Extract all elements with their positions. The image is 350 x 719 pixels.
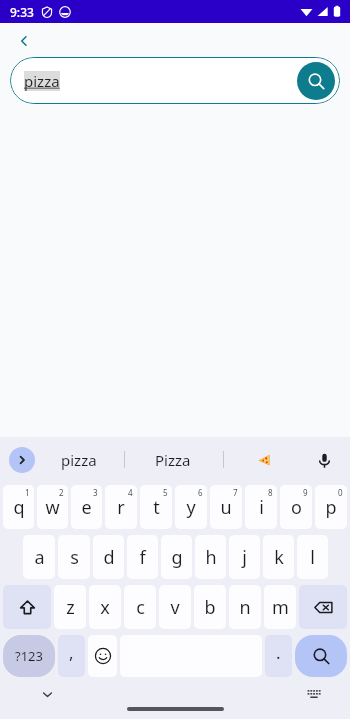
staticText: 5: [163, 487, 168, 498]
button[interactable]: m: [264, 585, 296, 629]
staticText: 1: [25, 487, 30, 498]
button[interactable]: x: [89, 585, 121, 629]
button[interactable]: Shift: [3, 585, 51, 629]
staticText: m: [272, 595, 289, 620]
staticText: q: [13, 495, 25, 520]
button[interactable]: Back: [10, 27, 38, 55]
staticText: b: [204, 595, 216, 620]
staticText: 9: [303, 487, 308, 498]
staticText: c: [136, 595, 145, 620]
button[interactable]: d: [93, 535, 124, 579]
staticText: 4: [128, 487, 133, 498]
staticText: s: [70, 545, 79, 570]
button[interactable]: o: [280, 485, 312, 529]
button[interactable]: Voice input: [308, 444, 340, 476]
button[interactable]: .: [265, 635, 292, 677]
button[interactable]: c: [124, 585, 156, 629]
button[interactable]: More suggestions: [9, 447, 35, 473]
staticText: pizza: [24, 71, 60, 91]
button[interactable]: f: [127, 535, 158, 579]
staticText: h: [205, 545, 217, 570]
button[interactable]: w: [37, 485, 68, 529]
button[interactable]: Pizza emoji: [244, 441, 282, 479]
staticText: 7: [233, 487, 238, 498]
staticText: o: [291, 495, 302, 520]
staticText: i: [259, 495, 264, 520]
button[interactable]: Search: [297, 62, 335, 100]
button[interactable]: Pizza: [133, 440, 213, 480]
button[interactable]: y: [175, 485, 207, 529]
button[interactable]: i: [245, 485, 277, 529]
button[interactable]: z: [54, 585, 86, 629]
staticText: z: [66, 595, 75, 620]
staticText: f: [139, 545, 146, 570]
staticText: g: [171, 545, 183, 570]
staticText: r: [117, 495, 125, 520]
staticText: w: [45, 495, 60, 520]
button[interactable]: r: [105, 485, 137, 529]
staticText: y: [186, 495, 196, 520]
staticText: ?123: [15, 647, 43, 665]
button[interactable]: Hide keyboard: [34, 681, 60, 707]
staticText: l: [310, 545, 315, 570]
staticText: 6: [198, 487, 203, 498]
button[interactable]: Emoji: [88, 635, 117, 677]
button[interactable]: l: [297, 535, 328, 579]
button[interactable]: g: [161, 535, 192, 579]
staticText: .: [276, 641, 281, 664]
staticText: v: [170, 595, 180, 620]
staticText: e: [81, 495, 92, 520]
staticText: t: [153, 495, 160, 520]
staticText: 3: [93, 487, 98, 498]
button[interactable]: ,: [58, 635, 85, 677]
button[interactable]: Backspace: [299, 585, 347, 629]
button[interactable]: t: [140, 485, 172, 529]
staticText: Pizza: [155, 450, 191, 470]
staticText: x: [100, 595, 110, 620]
staticText: u: [220, 495, 232, 520]
button[interactable]: b: [194, 585, 226, 629]
button[interactable]: v: [159, 585, 191, 629]
button[interactable]: ?123: [3, 635, 55, 677]
button[interactable]: j: [229, 535, 260, 579]
staticText: 0: [338, 487, 343, 498]
button[interactable]: u: [210, 485, 242, 529]
button[interactable]: q: [3, 485, 34, 529]
button[interactable]: p: [315, 485, 347, 529]
staticText: pizza: [61, 450, 97, 470]
staticText: 2: [59, 487, 64, 498]
staticText: p: [325, 495, 337, 520]
button[interactable]: Search: [295, 635, 347, 677]
button[interactable]: n: [229, 585, 261, 629]
button[interactable]: e: [71, 485, 102, 529]
button[interactable]: pizza: [10, 57, 340, 104]
staticText: a: [34, 545, 45, 570]
staticText: ,: [69, 641, 74, 664]
button[interactable]: a: [23, 535, 55, 579]
button[interactable]: pizza: [46, 440, 111, 480]
staticText: 9:33: [10, 4, 34, 20]
staticText: j: [242, 545, 247, 570]
button[interactable]: Change keyboard: [302, 682, 326, 706]
button[interactable]: k: [263, 535, 294, 579]
staticText: n: [239, 595, 251, 620]
staticText: k: [274, 545, 284, 570]
staticText: d: [103, 545, 115, 570]
staticText: 8: [268, 487, 273, 498]
button[interactable]: s: [58, 535, 90, 579]
button[interactable]: h: [195, 535, 226, 579]
